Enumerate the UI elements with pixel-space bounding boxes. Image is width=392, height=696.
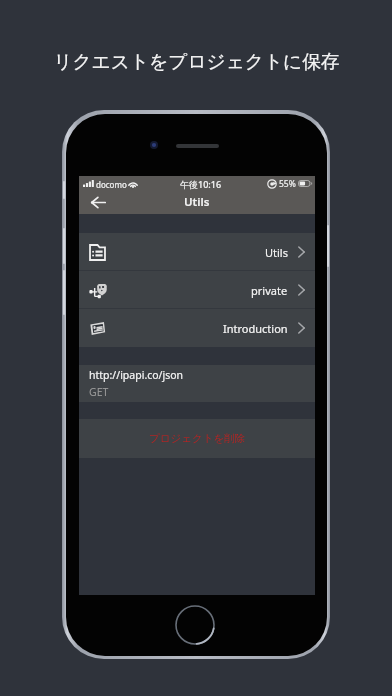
staticText: private bbox=[251, 283, 288, 298]
button[interactable]: Back bbox=[85, 190, 111, 214]
button[interactable]: private bbox=[79, 271, 315, 309]
staticText: Utils bbox=[265, 245, 288, 260]
staticText: 55% bbox=[279, 178, 296, 190]
staticText: docomo bbox=[96, 179, 127, 190]
staticText: リクエストをプロジェクトに保存 bbox=[53, 50, 340, 74]
button[interactable]: プロジェクトを削除 bbox=[79, 419, 315, 458]
staticText: GET bbox=[89, 385, 109, 399]
staticText: プロジェクトを削除 bbox=[149, 432, 246, 445]
staticText: Introduction bbox=[223, 321, 288, 336]
button[interactable]: Utils bbox=[79, 233, 315, 271]
staticText: 午後10:16 bbox=[180, 178, 222, 190]
staticText: Utils bbox=[184, 194, 210, 210]
staticText: http://ipapi.co/json bbox=[89, 368, 184, 382]
button[interactable]: http://ipapi.co/json bbox=[79, 365, 315, 402]
button[interactable]: Introduction bbox=[79, 309, 315, 347]
